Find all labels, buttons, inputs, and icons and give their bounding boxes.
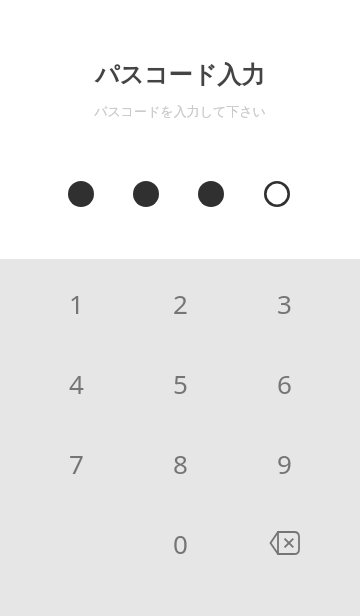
staticText: 3 [277, 286, 292, 321]
button[interactable]: 7 [24, 423, 128, 503]
button[interactable]: 6 [232, 343, 336, 423]
button[interactable]: 9 [232, 423, 336, 503]
staticText: 6 [277, 366, 292, 401]
staticText: 8 [173, 446, 188, 481]
staticText: 1 [69, 286, 84, 321]
button[interactable]: 0 [128, 503, 232, 583]
button[interactable]: 2 [128, 263, 232, 343]
button[interactable]: 3 [232, 263, 336, 343]
staticText: 9 [277, 446, 292, 481]
staticText: 2 [173, 286, 188, 321]
staticText: パスコード入力 [0, 60, 360, 90]
staticText: 5 [173, 366, 188, 401]
button[interactable]: 1 [24, 263, 128, 343]
staticText: パスコードを入力して下さい [0, 103, 360, 119]
button[interactable]: 4 [24, 343, 128, 423]
button[interactable]: Backspace [232, 503, 336, 583]
button[interactable]: 5 [128, 343, 232, 423]
staticText: 7 [69, 446, 84, 481]
button[interactable]: 8 [128, 423, 232, 503]
staticText: 4 [69, 366, 84, 401]
staticText: 0 [173, 526, 188, 561]
